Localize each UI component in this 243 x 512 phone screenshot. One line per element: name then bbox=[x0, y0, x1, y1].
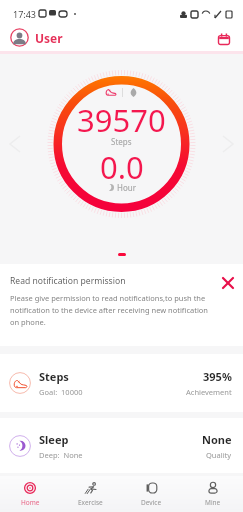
staticText: Achievement bbox=[186, 387, 232, 397]
staticText: 395% bbox=[203, 369, 232, 384]
staticText: Deep: None bbox=[39, 450, 83, 460]
button[interactable]: Sleep bbox=[0, 418, 243, 473]
staticText: Quality bbox=[206, 450, 232, 460]
staticText: None bbox=[202, 432, 232, 447]
staticText: Goal: 10000 bbox=[39, 387, 83, 397]
staticText: Home bbox=[21, 498, 40, 507]
staticText: Please give permission to read notificat… bbox=[10, 293, 211, 328]
staticText: Mine bbox=[205, 498, 221, 507]
staticText: Exercise bbox=[78, 498, 103, 507]
button[interactable]: Home bbox=[0, 476, 60, 512]
staticText: Hour bbox=[117, 182, 137, 193]
staticText: 39570 bbox=[77, 99, 166, 141]
button[interactable]: Calendar bbox=[213, 26, 235, 48]
staticText: Steps bbox=[111, 136, 132, 147]
button[interactable]: Steps bbox=[0, 354, 243, 412]
staticText: User bbox=[35, 30, 63, 46]
staticText: Steps bbox=[39, 369, 69, 384]
button[interactable]: User bbox=[10, 27, 63, 46]
staticText: 17:43 bbox=[13, 8, 37, 20]
staticText: Device bbox=[141, 498, 162, 507]
button[interactable]: Exercise bbox=[60, 476, 121, 512]
staticText: Sleep bbox=[39, 432, 69, 447]
button[interactable]: Mine bbox=[182, 476, 243, 512]
button[interactable]: Device bbox=[121, 476, 182, 512]
button[interactable]: Close bbox=[220, 275, 235, 290]
staticText: 0.0 bbox=[100, 146, 144, 188]
staticText: Read notification permission bbox=[10, 275, 126, 287]
